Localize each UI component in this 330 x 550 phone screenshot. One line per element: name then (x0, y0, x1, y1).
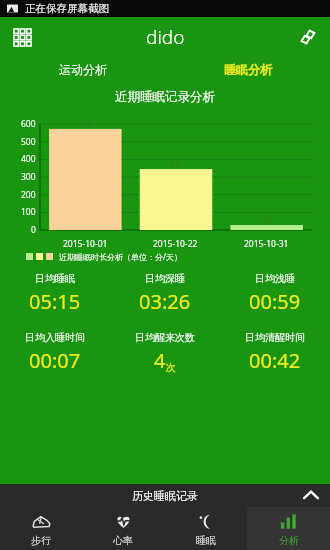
button[interactable]: 睡眠 (164, 507, 247, 550)
staticText: 日均清醒时间 (245, 331, 305, 344)
staticText: 2015-10-22 (153, 238, 198, 250)
staticText: 4 (154, 347, 166, 374)
staticText: 0 (31, 224, 36, 236)
staticText: 100 (21, 206, 36, 218)
staticText: 00:07 (29, 347, 81, 374)
staticText: 正在保存屏幕截图 (25, 2, 109, 15)
staticText: 日均深睡 (145, 272, 185, 285)
staticText: 00:59 (249, 288, 301, 315)
staticText: 分析 (279, 534, 299, 547)
staticText: 步行 (31, 534, 51, 547)
button[interactable]: 日均入睡时间 (0, 331, 110, 374)
staticText: 近期睡眠时长分析（单位：分/天） (59, 251, 182, 262)
button[interactable]: 分析 (247, 507, 330, 550)
button[interactable]: 日均睡眠 (0, 272, 110, 315)
staticText: 日均醒来次数 (135, 331, 195, 344)
staticText: 日均睡眠 (35, 272, 75, 285)
button[interactable]: 日均浅睡 (220, 272, 330, 315)
staticText: 00:42 (249, 347, 301, 374)
button[interactable]: 睡眠分析 (165, 56, 330, 82)
staticText: 400 (21, 153, 36, 165)
button[interactable]: 日均醒来次数 (110, 331, 220, 374)
button[interactable]: Link (292, 21, 324, 53)
staticText: 200 (21, 189, 36, 201)
staticText: 次 (166, 361, 176, 374)
staticText: 2015-10-01 (63, 238, 108, 250)
staticText: 345 (169, 158, 183, 169)
staticText: 近期睡眠记录分析 (115, 89, 215, 105)
staticText: 300 (21, 171, 36, 183)
button[interactable]: Menu (6, 21, 38, 53)
staticText: 05:15 (29, 288, 81, 315)
button[interactable]: 历史睡眠记录 (0, 484, 330, 507)
staticText: 日均浅睡 (255, 272, 295, 285)
staticText: 睡眠 (196, 534, 216, 547)
button[interactable]: 心率 (82, 507, 164, 550)
button[interactable]: 运动分析 (0, 56, 165, 82)
staticText: dido (146, 24, 185, 50)
staticText: 572 (78, 118, 92, 129)
button[interactable]: 日均清醒时间 (220, 331, 330, 374)
staticText: 500 (21, 136, 36, 148)
staticText: 睡眠分析 (224, 62, 272, 77)
staticText: 600 (21, 118, 36, 130)
button[interactable]: 步行 (0, 507, 82, 550)
staticText: 日均入睡时间 (25, 331, 85, 344)
staticText: 03:26 (139, 288, 191, 315)
staticText: 2015-10-31 (244, 238, 289, 250)
staticText: 运动分析 (59, 62, 107, 77)
staticText: 历史睡眠记录 (132, 489, 198, 503)
staticText: 28 (262, 214, 272, 225)
staticText: 心率 (113, 534, 133, 547)
button[interactable]: 日均深睡 (110, 272, 220, 315)
